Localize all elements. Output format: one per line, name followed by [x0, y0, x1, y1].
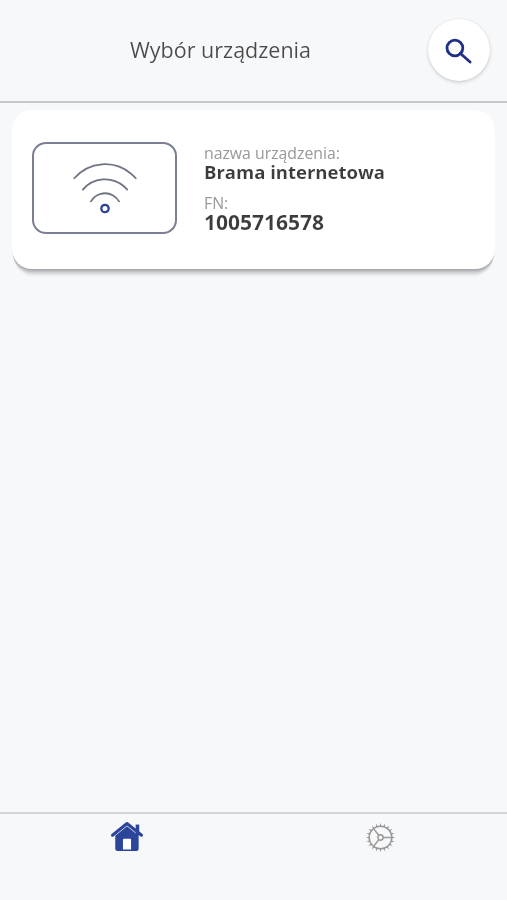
button[interactable]: nazwa urządzenia: [12, 110, 495, 269]
staticText: 1005716578 [204, 208, 325, 237]
button[interactable]: Home [0, 814, 253, 900]
staticText: FN: [204, 192, 229, 214]
button[interactable]: Settings [253, 814, 507, 900]
staticText: Brama internetowa [204, 159, 385, 184]
staticText: nazwa urządzenia: [204, 142, 340, 164]
staticText: Wybór urządzenia [130, 35, 311, 64]
button[interactable]: Search [428, 19, 490, 81]
